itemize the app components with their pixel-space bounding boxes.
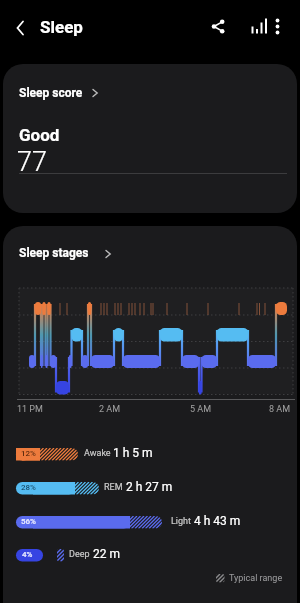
button[interactable]: Sleep score xyxy=(3,64,297,213)
staticText: Awake xyxy=(84,448,111,459)
staticText: 56% xyxy=(21,517,36,526)
staticText: Typical range xyxy=(229,573,283,584)
staticText: 2 h 27 m xyxy=(126,480,173,494)
staticText: Sleep stages xyxy=(19,246,89,260)
staticText: Light xyxy=(171,516,191,527)
staticText: Sleep xyxy=(40,17,83,37)
staticText: 22 m xyxy=(93,547,120,561)
staticText: 2 AM xyxy=(99,404,121,415)
button[interactable] xyxy=(269,16,290,37)
staticText: 4% xyxy=(22,550,33,559)
staticText: 1 h 5 m xyxy=(113,446,153,460)
staticText: Good xyxy=(19,125,60,145)
button[interactable] xyxy=(208,16,229,37)
staticText: 5 AM xyxy=(190,404,212,415)
button[interactable] xyxy=(3,238,297,268)
staticText: 11 PM xyxy=(17,404,43,415)
button[interactable] xyxy=(8,14,36,42)
staticText: 28% xyxy=(21,483,36,492)
staticText: Sleep score xyxy=(19,86,83,100)
staticText: 8 AM xyxy=(269,404,291,415)
button[interactable] xyxy=(249,16,270,37)
staticText: Deep xyxy=(69,549,90,560)
staticText: 12% xyxy=(21,449,36,458)
staticText: 77 xyxy=(17,146,47,178)
staticText: 4 h 43 m xyxy=(194,514,241,528)
staticText: REM xyxy=(104,482,123,493)
